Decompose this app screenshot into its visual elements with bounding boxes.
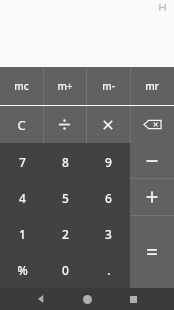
button[interactable]: Equals <box>130 216 174 288</box>
button[interactable]: m- <box>86 67 130 105</box>
button[interactable]: m+ <box>43 67 86 105</box>
button[interactable]: 1 <box>0 216 44 252</box>
staticText: m- <box>102 79 115 93</box>
staticText: 9 <box>105 154 112 170</box>
button[interactable]: mc <box>0 67 43 105</box>
button[interactable]: 9 <box>87 143 130 180</box>
button[interactable]: Minus <box>130 143 174 178</box>
button[interactable]: 3 <box>87 216 130 252</box>
button[interactable]: Multiply <box>86 106 130 143</box>
button[interactable]: 5 <box>44 180 87 216</box>
button[interactable]: 0 <box>44 252 87 288</box>
button[interactable]: mr <box>130 67 174 105</box>
button[interactable]: 7 <box>0 143 44 180</box>
staticText: 6 <box>105 190 112 206</box>
button[interactable]: 6 <box>87 180 130 216</box>
staticText: 7 <box>19 154 26 170</box>
staticText: m+ <box>57 79 73 93</box>
staticText: 3 <box>105 226 112 242</box>
staticText: 4 <box>19 190 26 206</box>
staticText: % <box>17 262 28 278</box>
button[interactable]: 2 <box>44 216 87 252</box>
staticText: 1 <box>19 226 26 242</box>
staticText: mr <box>145 79 159 93</box>
button[interactable]: C <box>0 106 43 143</box>
button[interactable]: % <box>0 252 44 288</box>
staticText: . <box>107 262 111 278</box>
staticText: 2 <box>62 226 69 242</box>
staticText: C <box>17 116 26 134</box>
button[interactable]: 4 <box>0 180 44 216</box>
button[interactable]: Backspace <box>130 106 174 143</box>
button[interactable]: 8 <box>44 143 87 180</box>
staticText: 5 <box>62 190 69 206</box>
button[interactable]: Back <box>18 288 64 310</box>
button[interactable]: Divide <box>43 106 86 143</box>
staticText: 0 <box>62 262 69 278</box>
staticText: 8 <box>62 154 69 170</box>
button[interactable]: Recent apps <box>110 288 156 310</box>
button[interactable]: . <box>87 252 130 288</box>
button[interactable]: Home <box>64 288 110 310</box>
button[interactable]: Plus <box>130 179 174 215</box>
staticText: mc <box>14 79 29 93</box>
